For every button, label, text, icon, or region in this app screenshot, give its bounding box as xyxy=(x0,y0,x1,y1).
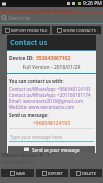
staticText: Phone contact # : 1 xyxy=(2,152,50,159)
staticText: You can contact us with: xyxy=(9,78,64,84)
staticText: Contact us xyxy=(10,38,48,48)
button[interactable]: WebSite: www.wecontacts.com xyxy=(9,104,75,110)
staticText: Device ID: xyxy=(9,55,36,62)
button[interactable]: IMPORT FROM FILE xyxy=(2,26,50,34)
staticText: Save Name As xyxy=(2,159,36,166)
staticText: +966548124193 xyxy=(7,120,96,127)
staticText: Full Version - 2016/01/29 xyxy=(7,64,96,71)
staticText: EXPORT xyxy=(48,171,63,176)
staticText: DELETE xyxy=(82,171,96,176)
button[interactable]: SAVE xyxy=(1,169,34,177)
staticText: IMPORT FROM FILE xyxy=(11,28,48,33)
staticText: WeContacts (Full Version) xyxy=(1,7,78,13)
button[interactable]: EXPORT xyxy=(36,169,68,177)
staticText: SHOW CONTACTS xyxy=(63,28,96,33)
button[interactable]: DELETE xyxy=(70,169,102,177)
button[interactable]: Send us your message xyxy=(8,146,95,153)
staticText: Send us message: xyxy=(9,112,49,118)
button[interactable]: Email: wecontacts2016@gmail.com xyxy=(9,98,84,104)
staticText: Send us your message xyxy=(32,147,80,153)
button[interactable]: Contact us/WhatsApp: +966548124193 xyxy=(9,86,91,92)
staticText: Type your message here xyxy=(10,134,62,140)
button[interactable]: SHOW CONTACTS xyxy=(52,26,101,34)
staticText: 352643067102 xyxy=(36,55,71,62)
staticText: Search by xyxy=(8,15,31,22)
staticText: 9:26 PM xyxy=(83,0,102,7)
button[interactable]: Contact us/WhatsApp: +201160181174 xyxy=(9,92,91,98)
staticText: SAVE xyxy=(16,171,26,176)
